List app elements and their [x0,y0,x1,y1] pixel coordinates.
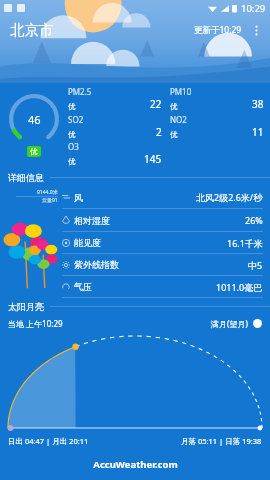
staticText: 优 [68,130,76,139]
staticText: 云量91 [42,197,58,204]
staticText: 满月(望月) [211,318,248,329]
staticText: 145 [144,152,162,166]
staticText: 相对湿度 [74,215,110,226]
staticText: 26% [245,214,263,226]
staticText: 优 [68,102,76,111]
staticText: PM2.5 [68,86,92,97]
staticText: 详细信息 [8,172,44,183]
button[interactable]: 气压 [62,276,263,298]
staticText: 22 [150,97,162,111]
staticText: 紫外线指数 [74,259,119,270]
staticText: 太阳月亮 [8,301,44,312]
staticText: 优 [68,157,76,166]
button[interactable]: 风 [62,186,263,209]
staticText: 38 [252,97,264,111]
staticText: 气压 [74,281,92,292]
staticText: NO2 [170,114,187,125]
staticText: O3 [68,141,79,152]
staticText: 中5 [248,259,263,271]
staticText: 46 [28,112,41,127]
staticText: 能见度 [74,237,101,248]
staticText: 月落 05:11 | 日落 19:38 [181,436,262,446]
button[interactable]: More options [247,21,265,39]
staticText: 当地 上午10:29 [8,318,63,329]
button[interactable]: 相对湿度 [62,209,263,232]
staticText: 10:29 [241,2,266,15]
staticText: 更新于10:29 [194,24,242,36]
staticText: 16.1千米 [227,237,263,249]
button[interactable]: AccuWeather.com [0,448,270,480]
staticText: PM10 [170,86,192,97]
button[interactable]: 紫外线指数 [62,254,263,276]
staticText: AccuWeather.com [93,458,178,471]
staticText: 优 [170,102,178,111]
button[interactable]: 46 [0,83,270,169]
staticText: 1011.0毫巴 [216,281,263,293]
staticText: SO2 [68,114,84,125]
staticText: 11 [252,125,264,139]
staticText: 北京市 [10,21,54,39]
staticText: 优 [170,130,178,139]
staticText: 优 [30,147,38,156]
button[interactable]: 能见度 [62,232,263,254]
staticText: 北风2级2.6米/秒 [196,191,263,203]
staticText: 2 [156,125,162,139]
staticText: 风 [74,192,83,203]
staticText: 日出 04:47 | 月出 20:11 [8,436,89,446]
staticText: 9144.0米 [37,189,58,196]
